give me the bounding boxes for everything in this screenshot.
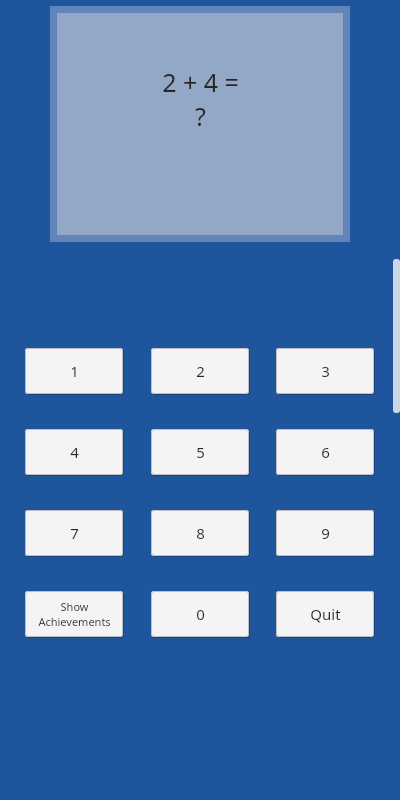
staticText: 2 + 4 = ?	[162, 65, 239, 133]
staticText: 8	[196, 523, 205, 543]
staticText: 6	[321, 442, 330, 462]
button[interactable]: Show Achievements	[25, 591, 123, 637]
staticText: Show Achievements	[38, 599, 111, 629]
staticText: 5	[196, 442, 205, 462]
button[interactable]: 9	[276, 510, 374, 556]
staticText: Quit	[310, 604, 341, 624]
staticText: 0	[196, 604, 205, 624]
button[interactable]: 2	[151, 348, 249, 394]
staticText: 9	[321, 523, 330, 543]
button[interactable]: 6	[276, 429, 374, 475]
button[interactable]: 3	[276, 348, 374, 394]
button[interactable]: 5	[151, 429, 249, 475]
staticText: 7	[70, 523, 79, 543]
button[interactable]: 1	[25, 348, 123, 394]
button[interactable]: 7	[25, 510, 123, 556]
staticText: 1	[70, 361, 79, 381]
button[interactable]: 0	[151, 591, 249, 637]
staticText: 3	[321, 361, 330, 381]
button[interactable]: 8	[151, 510, 249, 556]
staticText: 2	[196, 361, 205, 381]
staticText: 4	[70, 442, 79, 462]
button[interactable]: 4	[25, 429, 123, 475]
button[interactable]: Quit	[276, 591, 374, 637]
